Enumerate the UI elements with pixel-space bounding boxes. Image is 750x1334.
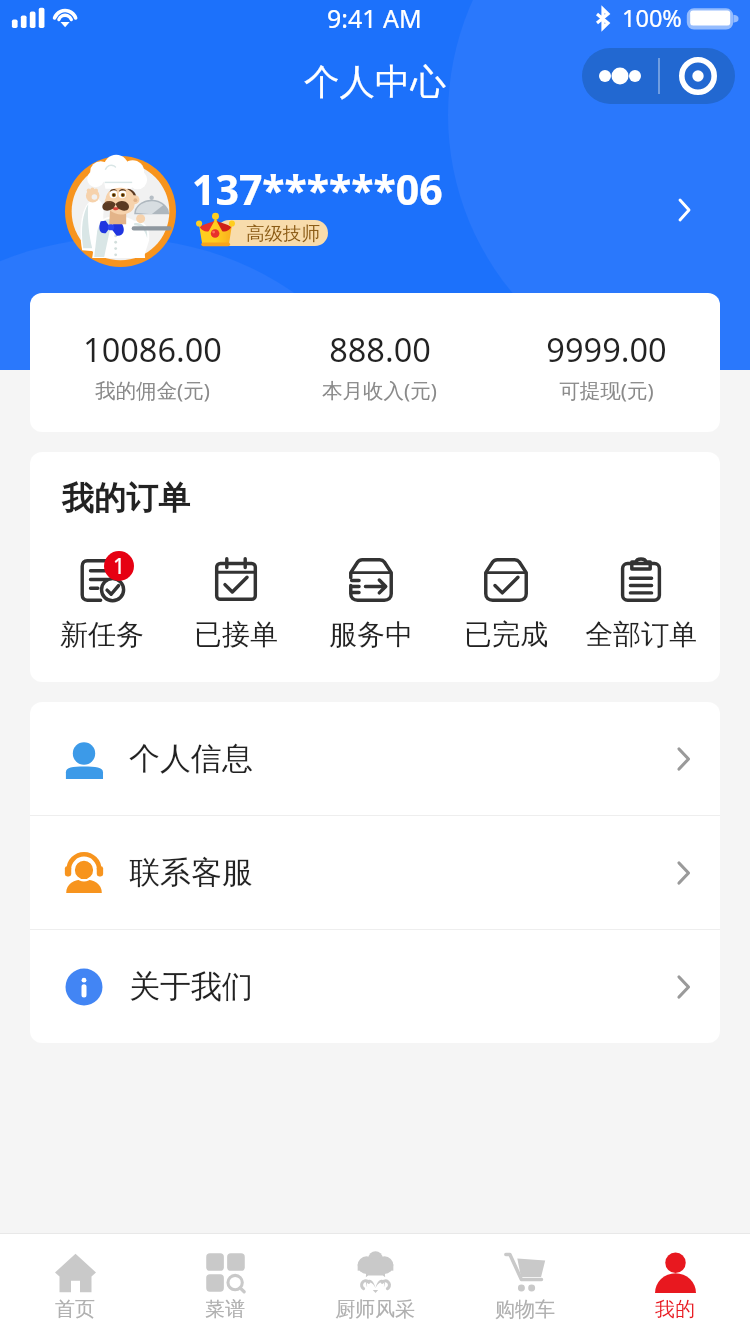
button[interactable]: 关于我们 xyxy=(30,930,720,1043)
button[interactable]: 1 xyxy=(35,551,169,652)
button[interactable]: 首页 xyxy=(0,1234,150,1334)
staticText: 已接单 xyxy=(194,617,278,652)
staticText: 9:41 AM xyxy=(327,1,422,35)
staticText: 全部订单 xyxy=(585,617,697,652)
staticText: 高级技师 xyxy=(246,222,320,245)
button[interactable]: 10086.00 xyxy=(38,293,266,432)
button[interactable]: 已完成 xyxy=(438,551,573,652)
staticText: 个人信息 xyxy=(129,739,253,778)
button[interactable]: More options xyxy=(582,48,735,104)
staticText: 9999.00 xyxy=(546,327,667,371)
staticText: 新任务 xyxy=(60,617,144,652)
staticText: 菜谱 xyxy=(205,1297,245,1322)
staticText: 我的 xyxy=(655,1297,695,1322)
button[interactable]: 联系客服 xyxy=(30,816,720,929)
button[interactable]: 个人信息 xyxy=(30,702,720,815)
staticText: 100% xyxy=(622,2,682,34)
staticText: 厨师风采 xyxy=(335,1297,415,1322)
staticText: 购物车 xyxy=(495,1297,555,1322)
staticText: 服务中 xyxy=(329,617,413,652)
button[interactable]: 全部订单 xyxy=(573,551,708,652)
staticText: 关于我们 xyxy=(129,967,253,1006)
button[interactable]: 888.00 xyxy=(266,293,493,432)
staticText: 本月收入(元) xyxy=(322,376,437,404)
button[interactable]: 厨师风采 xyxy=(300,1234,450,1334)
staticText: 个人中心 xyxy=(304,60,446,105)
button[interactable]: 服务中 xyxy=(303,551,438,652)
staticText: 首页 xyxy=(55,1297,95,1322)
button[interactable]: 9999.00 xyxy=(493,293,720,432)
staticText: 10086.00 xyxy=(83,327,222,371)
staticText: 888.00 xyxy=(329,327,431,371)
staticText: 我的订单 xyxy=(62,478,190,518)
staticText: 我的佣金(元) xyxy=(95,376,210,404)
staticText: 137******06 xyxy=(192,161,443,217)
staticText: 1 xyxy=(113,552,126,581)
button[interactable]: 购物车 xyxy=(450,1234,600,1334)
button[interactable]: 137******06 xyxy=(0,0,750,270)
staticText: 联系客服 xyxy=(129,853,253,892)
staticText: 已完成 xyxy=(464,617,548,652)
button[interactable]: 已接单 xyxy=(169,551,303,652)
button[interactable]: 我的 xyxy=(600,1234,750,1334)
button[interactable]: 菜谱 xyxy=(150,1234,300,1334)
staticText: 可提现(元) xyxy=(559,376,654,404)
